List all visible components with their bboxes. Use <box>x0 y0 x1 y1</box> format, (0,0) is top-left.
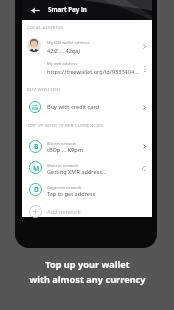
staticText: https://freewallet.org/id/9333404... <box>47 68 139 76</box>
staticText: M <box>33 164 40 173</box>
staticText: Monero network <box>47 163 79 168</box>
staticText: TOP UP WITH OTHER CURRENCIES <box>27 122 104 128</box>
button[interactable] <box>22 97 152 119</box>
button[interactable] <box>22 157 152 179</box>
staticText: Tap to get address <box>47 190 96 198</box>
staticText: Buy with credit card <box>47 103 100 111</box>
staticText: 42iZ ... 42qaj <box>47 47 80 55</box>
staticText: Dogecoin network <box>47 185 82 190</box>
button[interactable] <box>22 179 152 201</box>
staticText: Add network <box>47 208 81 216</box>
button[interactable]: Back <box>27 2 43 18</box>
button[interactable] <box>22 200 152 217</box>
button[interactable] <box>22 135 152 157</box>
button[interactable] <box>22 35 152 57</box>
staticText: D <box>34 185 39 194</box>
staticText: tBDp ... K9pm <box>47 146 83 154</box>
button[interactable]: More options <box>140 64 150 74</box>
staticText: Top up your wallet <box>45 258 130 271</box>
staticText: My web address <box>47 61 78 66</box>
staticText: B <box>34 142 39 151</box>
staticText: with almost any currency <box>29 273 146 286</box>
staticText: Getting XMR address... <box>47 168 107 176</box>
staticText: BUY WITH USD <box>27 86 61 92</box>
staticText: Smart Pay in <box>48 5 87 13</box>
button[interactable] <box>22 56 152 78</box>
staticText: My EOS wallet address <box>47 40 90 45</box>
staticText: Bitcoin network <box>47 141 77 146</box>
staticText: LOCAL ADDRESS <box>27 24 64 30</box>
